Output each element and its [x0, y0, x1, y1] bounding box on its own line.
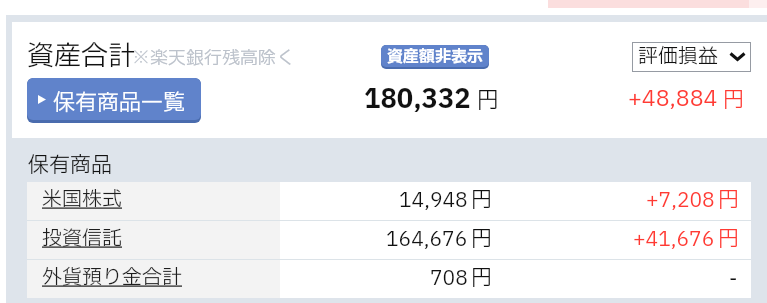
- staticText: 180,332: [364, 80, 471, 119]
- staticText: 164,676: [386, 225, 468, 255]
- button[interactable]: 評価損益: [632, 42, 751, 72]
- button[interactable]: 資産額非表示: [381, 45, 489, 69]
- staticText: 投資信託: [42, 224, 122, 254]
- staticText: 円: [471, 224, 492, 255]
- staticText: 14,948: [399, 186, 468, 216]
- staticText: +48,884: [628, 83, 718, 116]
- staticText: +41,676: [633, 225, 715, 255]
- staticText: 米国株式: [42, 185, 122, 215]
- staticText: 円: [471, 185, 492, 216]
- staticText: 資産額非表示: [387, 45, 484, 67]
- staticText: 円: [471, 263, 492, 294]
- staticText: 評価損益: [638, 42, 718, 72]
- staticText: 外貨預り金合計: [42, 263, 182, 293]
- staticText: 保有商品一覧: [53, 87, 186, 120]
- button[interactable]: 米国株式: [27, 182, 280, 220]
- staticText: 円: [718, 185, 739, 216]
- button[interactable]: 外貨預り金合計: [27, 260, 280, 298]
- staticText: 円: [723, 85, 744, 116]
- button[interactable]: 保有商品一覧: [27, 78, 201, 123]
- staticText: 円: [477, 85, 500, 118]
- staticText: 資産合計: [27, 36, 135, 76]
- staticText: +7,208: [646, 186, 715, 216]
- button[interactable]: 投資信託: [27, 221, 280, 259]
- staticText: 708: [430, 264, 468, 294]
- staticText: ※楽天銀行残高除く: [132, 45, 294, 72]
- staticText: 円: [718, 224, 739, 255]
- staticText: 保有商品: [28, 150, 112, 181]
- staticText: -: [729, 264, 738, 294]
